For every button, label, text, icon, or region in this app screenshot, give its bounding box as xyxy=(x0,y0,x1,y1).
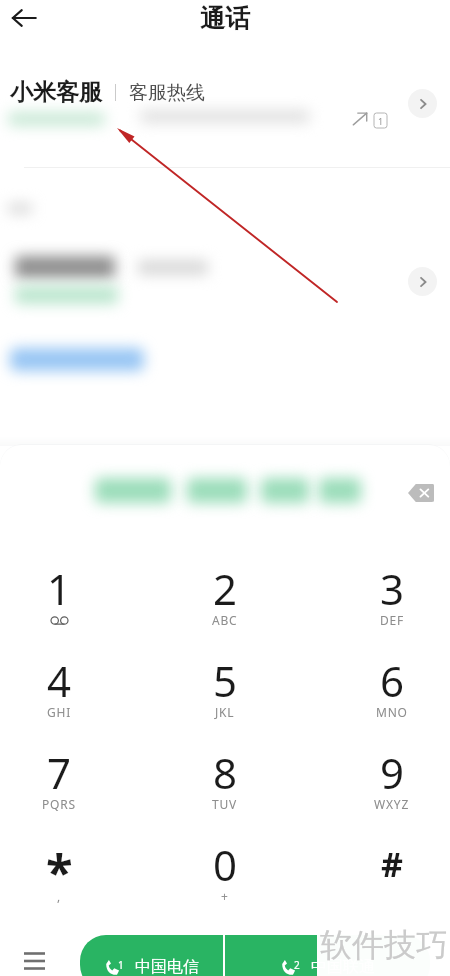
staticText: , xyxy=(57,888,62,904)
staticText: JKL xyxy=(215,704,235,720)
staticText: 0 xyxy=(213,836,238,893)
button[interactable]: 4 xyxy=(4,649,114,729)
staticText: 9 xyxy=(380,744,405,801)
staticText: 7 xyxy=(47,744,72,801)
button[interactable]: Delete xyxy=(403,475,439,511)
staticText: 6 xyxy=(380,652,405,709)
staticText: 4 xyxy=(47,652,72,709)
staticText: 2 xyxy=(213,560,238,617)
staticText: 软件技巧 xyxy=(320,925,448,965)
button[interactable]: Open xyxy=(408,89,437,118)
button[interactable]: 5 xyxy=(170,649,280,729)
staticText: 中国电信 xyxy=(135,957,199,976)
button[interactable]: 2 xyxy=(170,557,280,637)
button[interactable]: 小米客服 xyxy=(0,74,450,167)
staticText: 通话 xyxy=(200,3,250,34)
staticText: ABC xyxy=(212,612,238,628)
staticText: WXYZ xyxy=(374,796,410,812)
staticText: PQRS xyxy=(42,796,76,812)
button[interactable]: 9 xyxy=(337,741,447,821)
staticText: 小米客服 xyxy=(10,78,102,107)
button[interactable] xyxy=(0,168,450,398)
staticText: GHI xyxy=(47,704,72,720)
staticText: 2 xyxy=(294,958,300,972)
button[interactable]: Menu xyxy=(13,940,55,976)
staticText: 客服热线 xyxy=(129,81,205,105)
staticText: * xyxy=(46,838,73,905)
staticText: TUV xyxy=(212,796,238,812)
button[interactable]: 1 xyxy=(80,935,223,976)
button[interactable]: 3 xyxy=(337,557,447,637)
staticText: 5 xyxy=(213,652,238,709)
button[interactable]: 0 xyxy=(170,833,280,913)
staticText: 1 xyxy=(118,958,124,972)
staticText: # xyxy=(381,841,403,887)
staticText: 1 xyxy=(378,115,384,127)
button[interactable]: Back xyxy=(2,0,46,40)
button[interactable]: 1 xyxy=(4,557,114,637)
button[interactable]: 2 xyxy=(225,935,430,976)
button[interactable]: Open xyxy=(408,267,437,296)
staticText: MNO xyxy=(376,704,408,720)
staticText: 8 xyxy=(213,744,238,801)
button[interactable]: 6 xyxy=(337,649,447,729)
staticText: 中国联通 xyxy=(311,957,375,976)
button[interactable]: 7 xyxy=(4,741,114,821)
staticText: 3 xyxy=(380,560,405,617)
button[interactable]: 8 xyxy=(170,741,280,821)
staticText: DEF xyxy=(380,612,405,628)
button[interactable]: * xyxy=(4,833,114,913)
staticText: + xyxy=(221,888,229,904)
button[interactable]: # xyxy=(337,833,447,913)
staticText: 1 xyxy=(47,560,72,617)
